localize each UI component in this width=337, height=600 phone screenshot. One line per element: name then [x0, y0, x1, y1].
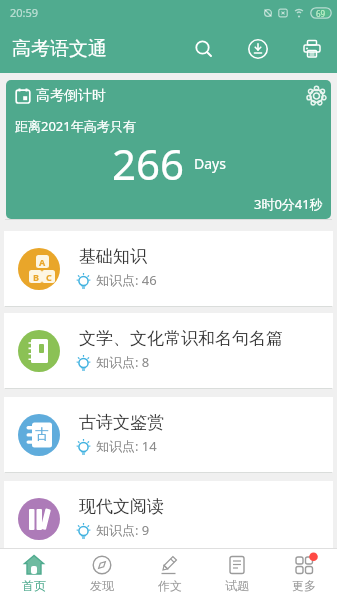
staticText: 更多	[292, 578, 316, 593]
staticText: 高考倒计时	[36, 87, 106, 105]
button[interactable]	[247, 38, 269, 60]
staticText: 作文	[158, 578, 182, 593]
staticText: 知识点: 9	[96, 521, 150, 539]
staticText: 69	[316, 8, 326, 19]
staticText: 试题	[225, 578, 249, 593]
staticText: 知识点: 8	[96, 353, 150, 371]
button[interactable]: 作文	[136, 549, 203, 600]
staticText: 知识点: 46	[96, 271, 157, 289]
staticText: 古诗文鉴赏	[79, 412, 164, 433]
staticText: 基础知识	[79, 246, 147, 267]
button[interactable]: 现代文阅读	[4, 481, 333, 556]
staticText: 首页	[22, 578, 46, 593]
staticText: Days	[194, 154, 226, 173]
staticText: 266	[112, 135, 185, 192]
button[interactable]: 高考倒计时	[6, 80, 331, 219]
staticText: 发现	[90, 578, 114, 593]
staticText: 古	[35, 426, 49, 444]
button[interactable]: A	[4, 231, 333, 306]
staticText: C	[46, 271, 52, 283]
button[interactable]	[306, 87, 327, 105]
button[interactable]: 更多	[270, 549, 337, 600]
staticText: 距离2021年高考只有	[15, 117, 136, 135]
staticText: 知识点: 14	[96, 437, 157, 455]
button[interactable]: 试题	[203, 549, 270, 600]
staticText: A	[39, 256, 46, 268]
button[interactable]	[193, 38, 215, 60]
button[interactable]: 首页	[0, 549, 68, 600]
staticText: B	[33, 271, 39, 283]
button[interactable]: 发现	[68, 549, 136, 600]
button[interactable]: 文学、文化常识和名句名篇	[4, 313, 333, 388]
staticText: 高考语文通	[12, 37, 107, 61]
staticText: 3时0分41秒	[254, 195, 323, 213]
staticText: 文学、文化常识和名句名篇	[79, 328, 283, 349]
button[interactable]	[301, 38, 323, 60]
button[interactable]: 古	[4, 397, 333, 472]
staticText: 现代文阅读	[79, 496, 164, 517]
staticText: 20:59	[10, 5, 39, 20]
